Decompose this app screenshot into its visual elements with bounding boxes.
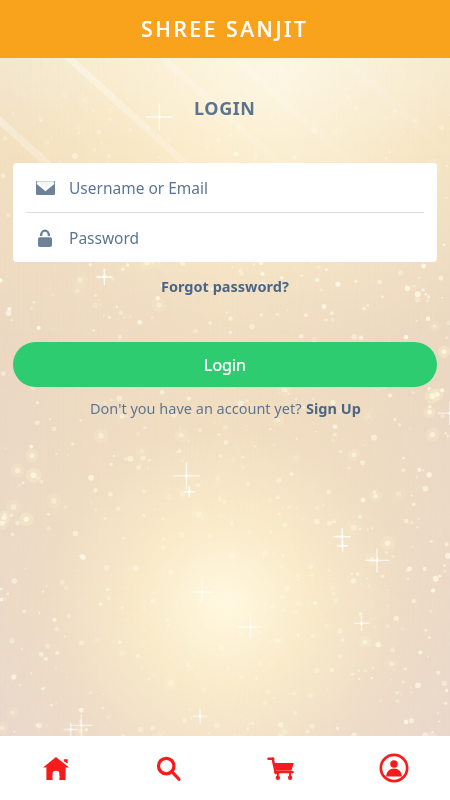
button[interactable]: Password <box>13 213 437 262</box>
button[interactable]: Search <box>112 736 224 800</box>
staticText: Login <box>204 354 246 376</box>
staticText: LOGIN <box>194 96 256 121</box>
staticText: Forgot password? <box>161 276 289 296</box>
button[interactable]: Account <box>337 736 450 800</box>
staticText: Password <box>69 227 140 248</box>
staticText: Don't you have an account yet? <box>90 398 306 418</box>
staticText: Username or Email <box>69 177 209 198</box>
button[interactable]: Login <box>13 342 437 387</box>
button[interactable]: Home <box>0 736 112 800</box>
button[interactable]: Username or Email <box>13 163 437 212</box>
button[interactable]: Forgot password? <box>153 272 297 300</box>
staticText: SHREE SANJIT <box>141 15 309 44</box>
button[interactable]: Cart <box>224 736 337 800</box>
staticText: Sign Up <box>306 398 361 418</box>
button[interactable]: Sign Up <box>306 398 361 418</box>
